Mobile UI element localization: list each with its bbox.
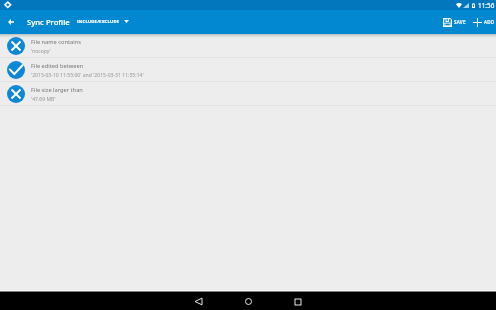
staticText: File edited between	[31, 62, 84, 70]
button[interactable]: Recents	[277, 292, 319, 310]
button[interactable]: File edited between	[0, 58, 496, 81]
button[interactable]: ADD	[472, 10, 496, 34]
staticText: SAVE	[454, 19, 466, 25]
staticText: '2015-03-10 11:55:00' and '2015-03-31 11…	[31, 72, 144, 79]
staticText: ADD	[484, 19, 495, 25]
button[interactable]: Home	[227, 292, 269, 310]
staticText: Sync Profile	[27, 17, 70, 27]
staticText: INCLUDE/EXCLUDE	[77, 19, 120, 25]
button[interactable]: SAVE	[442, 10, 467, 34]
staticText: 11:56	[478, 1, 495, 10]
button[interactable]: File size larger than	[0, 82, 496, 105]
button[interactable]: Back	[0, 10, 22, 34]
staticText: '47.69 MB'	[31, 96, 56, 103]
staticText: 'nocopy'	[31, 48, 51, 55]
staticText: File size larger than	[31, 86, 83, 94]
button[interactable]: Back	[177, 292, 219, 310]
button[interactable]: INCLUDE/EXCLUDE	[77, 10, 129, 34]
staticText: File name contains	[31, 38, 81, 46]
button[interactable]: File name contains	[0, 34, 496, 57]
